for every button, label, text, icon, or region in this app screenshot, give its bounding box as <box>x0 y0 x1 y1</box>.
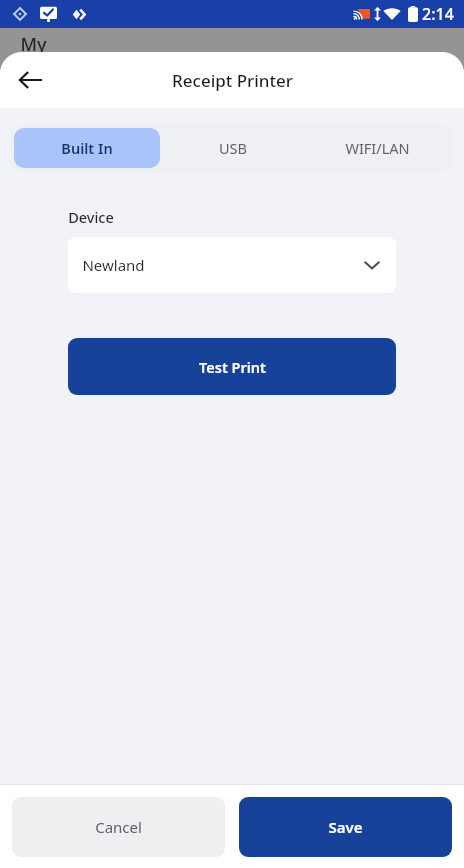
staticText: Device <box>68 207 114 227</box>
staticText: Built In <box>61 138 113 158</box>
button[interactable]: Cancel <box>12 797 225 857</box>
button[interactable]: Test Print <box>68 338 396 395</box>
staticText: Newland <box>82 255 145 275</box>
staticText: Receipt Printer <box>172 69 293 92</box>
staticText: USB <box>219 138 247 158</box>
staticText: Test Print <box>199 357 266 377</box>
staticText: Save <box>328 817 363 837</box>
button[interactable]: WIFI/LAN <box>305 128 450 168</box>
button[interactable]: Save <box>239 797 452 857</box>
button[interactable]: Built In <box>14 128 160 168</box>
staticText: My <box>20 32 47 57</box>
staticText: Cancel <box>95 817 142 837</box>
button[interactable]: USB <box>160 128 305 168</box>
button[interactable]: Back <box>6 56 54 104</box>
button[interactable]: Newland <box>68 237 396 293</box>
staticText: WIFI/LAN <box>345 138 410 158</box>
staticText: 2:14 <box>422 3 454 25</box>
